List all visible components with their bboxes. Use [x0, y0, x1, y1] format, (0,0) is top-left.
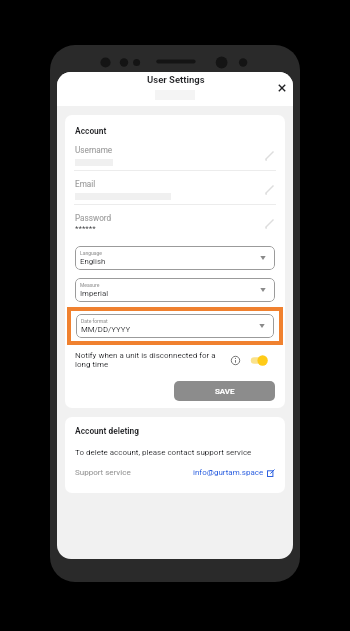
staticText: Support service: [75, 468, 131, 477]
staticText: MM/DD/YYYY: [81, 325, 131, 334]
staticText: SAVE: [215, 387, 235, 396]
button[interactable]: SAVE: [174, 381, 275, 401]
staticText: Username: [75, 145, 113, 155]
staticText: To delete account, please contact suppor…: [75, 448, 252, 457]
staticText: info@gurtam.space: [193, 468, 264, 477]
staticText: User Settings: [147, 74, 205, 85]
button[interactable]: Language: [75, 246, 275, 270]
staticText: Account deleting: [75, 426, 140, 436]
staticText: Imperial: [80, 289, 109, 298]
staticText: English: [80, 257, 106, 266]
button[interactable]: Edit: [263, 149, 276, 162]
button[interactable]: Toggle disconnect notification: [250, 354, 271, 367]
button[interactable]: Close: [275, 81, 289, 95]
staticText: Measure: [80, 282, 100, 288]
button[interactable]: Edit: [263, 217, 276, 230]
button[interactable]: Measure: [75, 278, 275, 302]
staticText: Date format: [81, 318, 108, 324]
staticText: Language: [80, 250, 102, 256]
staticText: Notify when a unit is disconnected for a…: [75, 351, 216, 369]
staticText: Account: [75, 126, 107, 136]
button[interactable]: Date format: [76, 314, 274, 338]
staticText: ******: [75, 224, 96, 233]
staticText: Email: [75, 179, 96, 189]
button[interactable]: Info: [229, 354, 242, 367]
button[interactable]: info@gurtam.space: [193, 468, 275, 477]
staticText: Password: [75, 213, 112, 223]
button[interactable]: Edit: [263, 183, 276, 196]
